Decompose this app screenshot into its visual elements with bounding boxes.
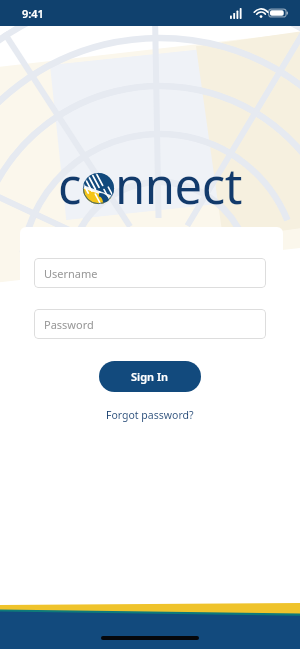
staticText: Sign In [131,369,169,384]
staticText: c [58,152,82,219]
staticText: Username [44,266,98,281]
button[interactable]: Username [34,258,266,288]
button[interactable]: Forgot password? [100,406,200,424]
staticText: Forgot password? [106,408,194,422]
staticText: Password [44,317,94,332]
staticText: nnect [115,152,242,219]
staticText: 9:41 [22,6,44,21]
button[interactable]: Sign In [99,361,201,392]
button[interactable]: Password [34,309,266,339]
